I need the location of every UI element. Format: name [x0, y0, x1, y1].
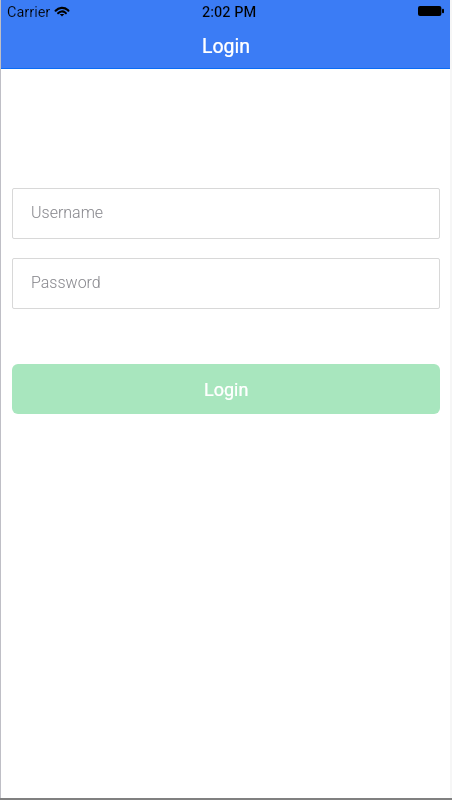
staticText: Login: [202, 35, 251, 58]
button[interactable]: Username: [12, 188, 440, 239]
staticText: Carrier: [7, 4, 51, 21]
button[interactable]: Login: [12, 364, 440, 414]
other: Battery full: [418, 6, 444, 16]
other: Wi-Fi signal: [55, 6, 69, 16]
staticText: Password: [31, 273, 101, 292]
staticText: Login: [204, 379, 249, 400]
button[interactable]: Password: [12, 258, 440, 309]
staticText: Username: [31, 203, 104, 222]
staticText: 2:02 PM: [202, 4, 257, 21]
